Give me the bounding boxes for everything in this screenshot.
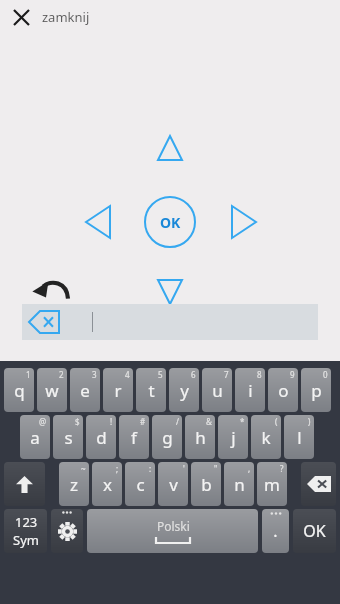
staticText: " [214,463,218,474]
button[interactable]: Up [157,135,183,161]
button[interactable]: 8 [235,368,265,412]
staticText: w [45,379,59,402]
staticText: a [30,426,40,449]
staticText: @ [39,416,47,427]
button[interactable]: Right [231,205,257,239]
staticText: : [149,463,152,474]
staticText: 0 [323,369,328,380]
staticText: ' [183,463,185,474]
staticText: ? [280,463,284,474]
button[interactable]: 5 [136,368,166,412]
button[interactable]: Backspace [301,462,336,506]
button[interactable]: Settings [51,509,83,553]
button[interactable]: 1 [4,368,34,412]
staticText: & [206,416,212,427]
staticText: h [195,426,206,449]
staticText: z [70,473,78,496]
button[interactable]: 6 [169,368,199,412]
staticText: b [201,473,212,496]
staticText: 4 [125,369,130,380]
button[interactable]: " [191,462,221,506]
staticText: t [148,379,155,402]
staticText: k [261,426,271,449]
button[interactable]: Period [262,509,289,553]
staticText: 3 [92,369,97,380]
button[interactable]: ? [257,462,287,506]
button[interactable]: 3 [70,368,100,412]
staticText: m [264,473,280,496]
button[interactable]: # [119,415,149,459]
button[interactable]: / [152,415,182,459]
staticText: 7 [224,369,229,380]
button[interactable]: Left [85,205,111,239]
staticText: d [96,426,107,449]
button[interactable]: Shift [4,462,45,506]
staticText: u [212,379,223,402]
staticText: s [64,426,73,449]
button[interactable]: * [218,415,248,459]
staticText: Sym [13,531,39,549]
button[interactable]: 123 [4,509,47,553]
staticText: i [248,379,253,402]
staticText: , [248,463,251,474]
staticText: * [240,416,245,427]
button[interactable]: 9 [268,368,298,412]
button[interactable]: Clear [22,304,318,340]
staticText: 6 [191,369,196,380]
staticText: g [162,426,173,449]
staticText: 9 [290,369,295,380]
staticText: Polski [157,518,190,534]
button[interactable]: ( [251,415,281,459]
button[interactable]: ) [284,415,314,459]
staticText: c [136,473,145,496]
staticText: j [231,426,236,449]
staticText: l [297,426,302,449]
staticText: ~ [81,463,86,474]
staticText: r [114,379,122,402]
staticText: 1 [26,369,31,380]
staticText: ) [308,416,311,427]
staticText: 2 [59,369,64,380]
button[interactable]: OK [144,196,196,248]
button[interactable]: 7 [202,368,232,412]
staticText: zamknij [42,8,90,26]
staticText: v [169,473,178,496]
staticText: 123 [15,513,38,531]
button[interactable]: ~ [59,462,89,506]
button[interactable]: Space [87,509,258,553]
staticText: x [103,473,112,496]
button[interactable]: ! [86,415,116,459]
staticText: n [234,473,245,496]
button[interactable]: Back [30,274,70,304]
staticText: $ [75,416,80,427]
staticText: 5 [158,369,163,380]
staticText: ( [275,416,278,427]
staticText: OK [303,520,326,542]
button[interactable]: , [224,462,254,506]
staticText: o [278,379,289,402]
staticText: # [140,416,146,427]
button[interactable]: 2 [37,368,67,412]
button[interactable]: zamknij [0,0,340,34]
button[interactable]: 4 [103,368,133,412]
button[interactable]: ; [92,462,122,506]
button[interactable]: Down [157,279,183,305]
button[interactable]: & [185,415,215,459]
button[interactable]: Clear [28,310,60,334]
staticText: f [131,426,137,449]
staticText: . [273,520,278,542]
button[interactable]: ' [158,462,188,506]
button[interactable]: : [125,462,155,506]
button[interactable]: 0 [301,368,331,412]
staticText: y [180,379,189,402]
button[interactable]: OK [293,509,336,553]
staticText: / [176,416,179,427]
staticText: e [80,379,90,402]
staticText: q [14,379,25,402]
staticText: p [311,379,322,402]
staticText: ! [110,416,113,427]
staticText: ; [116,463,119,474]
button[interactable]: $ [53,415,83,459]
staticText: OK [160,213,181,232]
button[interactable]: @ [20,415,50,459]
